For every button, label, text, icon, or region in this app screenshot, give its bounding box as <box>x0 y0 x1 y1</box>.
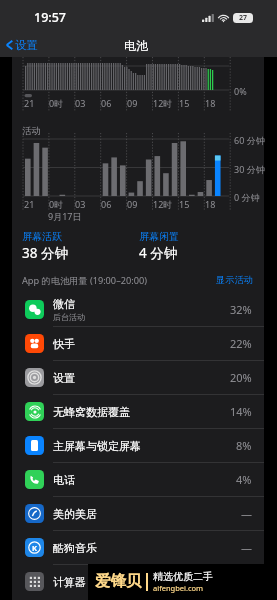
staticText: 03 <box>75 198 86 210</box>
staticText: — <box>241 506 252 521</box>
staticText: 屏幕闲置 <box>139 230 179 243</box>
staticText: 32% <box>230 302 252 317</box>
staticText: 12时 <box>153 198 173 210</box>
staticText: 9月17日 <box>48 210 82 222</box>
staticText: 15 <box>179 97 190 109</box>
staticText: K <box>32 543 37 553</box>
staticText: 计算器 <box>53 575 86 589</box>
staticText: 精选优质二手 <box>153 570 213 583</box>
staticText: 主屏幕与锁定屏幕 <box>53 439 141 453</box>
staticText: 18 <box>205 198 216 210</box>
staticText: 快手 <box>53 337 75 351</box>
staticText: 设置 <box>15 38 38 52</box>
button[interactable]: 显示活动 <box>212 270 257 290</box>
staticText: 0% <box>234 85 247 97</box>
staticText: 20% <box>230 370 252 385</box>
staticText: 微信 <box>53 297 75 311</box>
staticText: 4% <box>236 472 252 487</box>
staticText: 设置 <box>53 371 75 385</box>
staticText: 8% <box>236 438 252 453</box>
button[interactable]: K <box>12 531 264 564</box>
staticText: 18 <box>205 97 216 109</box>
staticText: 爱锋贝 <box>95 571 142 591</box>
button[interactable]: 设置 <box>0 35 44 55</box>
button[interactable]: 电话 <box>12 463 264 496</box>
staticText: 电池 <box>124 38 148 53</box>
staticText: 09 <box>127 97 138 109</box>
staticText: 美的美居 <box>53 507 97 521</box>
staticText: 60 分钟 <box>234 134 265 146</box>
staticText: 21 <box>24 198 35 210</box>
staticText: 后台活动 <box>53 312 85 322</box>
staticText: 无蜂窝数据覆盖 <box>53 405 130 419</box>
button[interactable]: 快手 <box>12 327 264 360</box>
staticText: 0时 <box>49 198 64 210</box>
staticText: 活动 <box>22 125 41 137</box>
staticText: 30 分钟 <box>234 163 265 175</box>
button[interactable]: 主屏幕与锁定屏幕 <box>12 429 264 462</box>
staticText: 酷狗音乐 <box>53 541 97 555</box>
staticText: 显示活动 <box>216 274 253 286</box>
staticText: 12时 <box>153 97 173 109</box>
staticText: 09 <box>127 198 138 210</box>
staticText: 03 <box>75 97 86 109</box>
staticText: aifengbei.com <box>153 583 204 593</box>
staticText: 21 <box>24 97 35 109</box>
staticText: 0时 <box>49 97 64 109</box>
staticText: 14% <box>230 404 252 419</box>
staticText: 27 <box>239 13 248 23</box>
staticText: App 的电池用量 (19:00–20:00) <box>22 274 147 287</box>
staticText: 屏幕活跃 <box>22 230 62 243</box>
button[interactable]: 美的美居 <box>12 497 264 530</box>
staticText: 06 <box>101 198 112 210</box>
button[interactable]: 无蜂窝数据覆盖 <box>12 395 264 428</box>
staticText: 电话 <box>53 473 75 487</box>
button[interactable]: 计算器 <box>12 565 264 598</box>
staticText: 4 分钟 <box>139 244 178 262</box>
staticText: 22% <box>230 336 252 351</box>
staticText: 06 <box>101 97 112 109</box>
staticText: 15 <box>179 198 190 210</box>
staticText: — <box>241 540 252 555</box>
button[interactable]: 设置 <box>12 361 264 394</box>
staticText: 0 分钟 <box>234 191 260 203</box>
staticText: 38 分钟 <box>22 244 68 262</box>
button[interactable]: 微信 <box>12 293 264 326</box>
staticText: 19:57 <box>34 9 67 26</box>
